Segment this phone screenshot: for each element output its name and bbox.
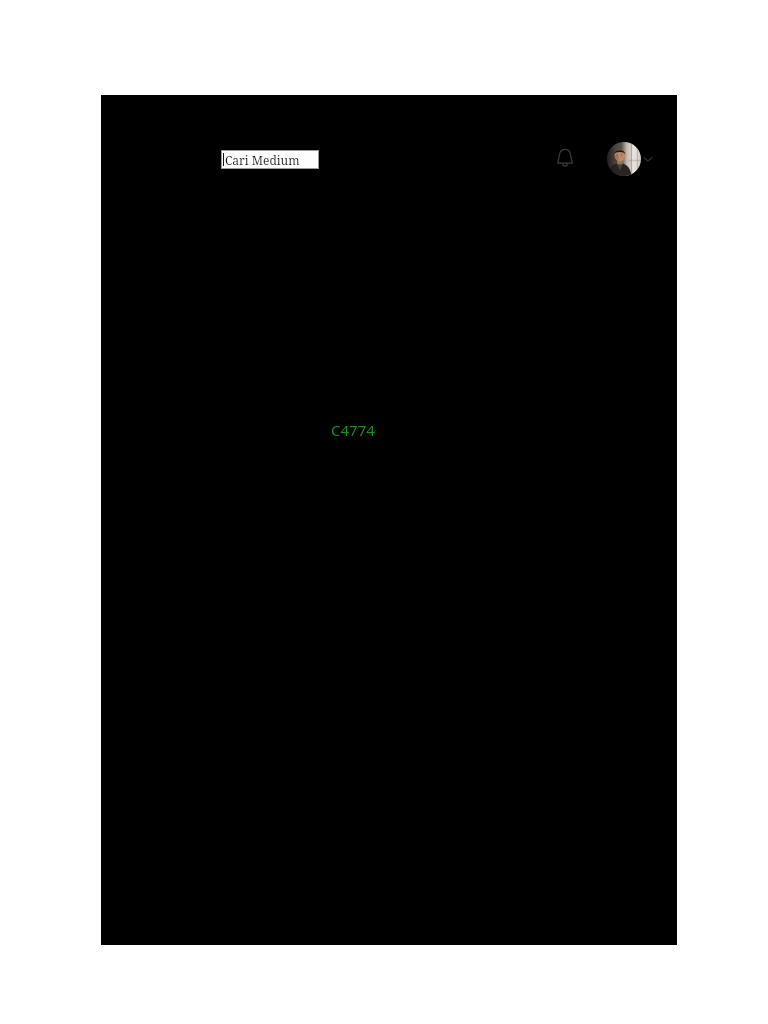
button[interactable]: Profile xyxy=(607,142,641,176)
button[interactable]: Notifications xyxy=(553,145,577,171)
staticText: Cari Medium xyxy=(225,152,300,168)
button[interactable]: Cari Medium xyxy=(221,150,319,169)
staticText: C4774< xyxy=(331,420,383,440)
button[interactable]: Open account menu xyxy=(640,151,656,167)
